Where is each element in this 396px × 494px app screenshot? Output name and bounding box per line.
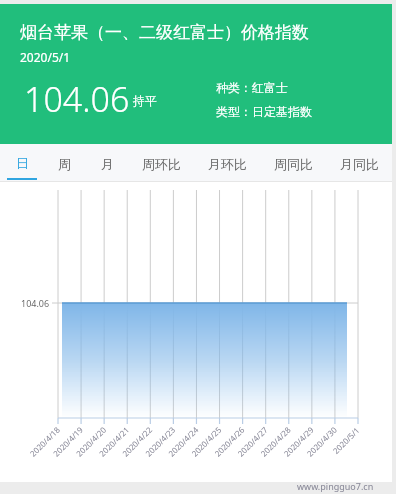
staticText: 烟台苹果（一、二级红富士）价格指数 (20, 22, 309, 43)
staticText: 周环比 (142, 156, 181, 172)
staticText: 种类：红富士 (216, 80, 288, 95)
button[interactable]: 月 (86, 144, 128, 182)
button[interactable]: 月环比 (194, 144, 260, 182)
staticText: 月环比 (208, 156, 247, 172)
staticText: 月同比 (340, 156, 379, 172)
button[interactable]: 周 (43, 144, 86, 182)
staticText: 类型：日定基指数 (216, 104, 312, 119)
button[interactable]: 周同比 (260, 144, 326, 182)
staticText: 周同比 (274, 156, 313, 172)
staticText: 月 (101, 156, 114, 172)
staticText: 持平 (133, 93, 157, 108)
staticText: 周 (58, 156, 71, 172)
button[interactable]: 周环比 (128, 144, 194, 182)
staticText: 104.06 (24, 76, 130, 122)
button[interactable]: 月同比 (326, 144, 392, 182)
staticText: 2020/5/1 (20, 49, 71, 65)
staticText: 日 (16, 155, 29, 171)
button[interactable]: 日 (0, 144, 43, 182)
